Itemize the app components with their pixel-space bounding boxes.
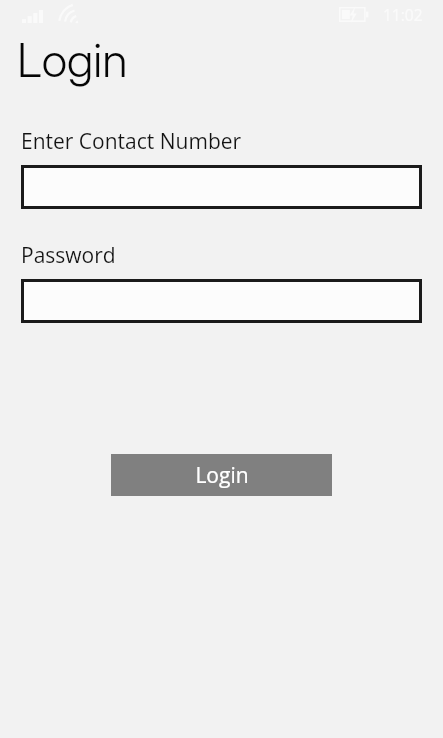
staticText: Login — [17, 31, 128, 88]
staticText: Enter Contact Number — [21, 127, 242, 156]
staticText: Password — [21, 241, 116, 270]
other: Wi-Fi — [58, 6, 80, 24]
staticText: Login — [195, 461, 249, 490]
button[interactable]: Password input — [21, 279, 422, 323]
button[interactable]: Login — [111, 454, 332, 496]
button[interactable]: Contact number input — [21, 165, 422, 209]
other: Battery — [339, 7, 369, 22]
other: Signal strength — [22, 10, 43, 23]
